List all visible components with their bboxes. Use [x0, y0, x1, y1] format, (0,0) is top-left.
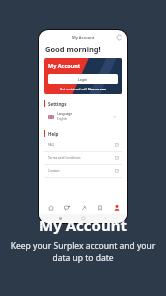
staticText: My Account [48, 62, 81, 69]
staticText: Settings [48, 101, 67, 107]
button[interactable]: My Account [111, 202, 122, 213]
button[interactable]: Contact [44, 165, 122, 177]
button[interactable]: Login [48, 74, 118, 84]
button[interactable]: FAQ [44, 139, 122, 151]
button[interactable]: Watchlist [94, 202, 105, 213]
staticText: Not registered yet? [60, 88, 88, 90]
staticText: Contact [48, 169, 60, 173]
button[interactable]: Search [61, 202, 72, 213]
button[interactable]: Language [44, 109, 122, 124]
staticText: FAQ [48, 143, 55, 147]
staticText: My Account [72, 35, 95, 40]
staticText: Keep your Surplex account and your data … [8, 240, 158, 264]
staticText: Good morning! [45, 44, 101, 54]
staticText: Language [57, 112, 73, 116]
staticText: English [57, 117, 68, 121]
staticText: My Account [39, 215, 127, 235]
staticText: Login [78, 77, 88, 82]
button[interactable]: Sign up now [88, 88, 107, 90]
button[interactable]: Terms and Conditions [44, 152, 122, 164]
staticText: Help [48, 131, 59, 137]
staticText: Terms and Conditions [48, 156, 81, 160]
button[interactable]: My Account [44, 58, 122, 94]
button[interactable]: Home [45, 202, 56, 213]
button[interactable]: Refresh [115, 33, 124, 42]
button[interactable]: Auctions [78, 202, 89, 213]
